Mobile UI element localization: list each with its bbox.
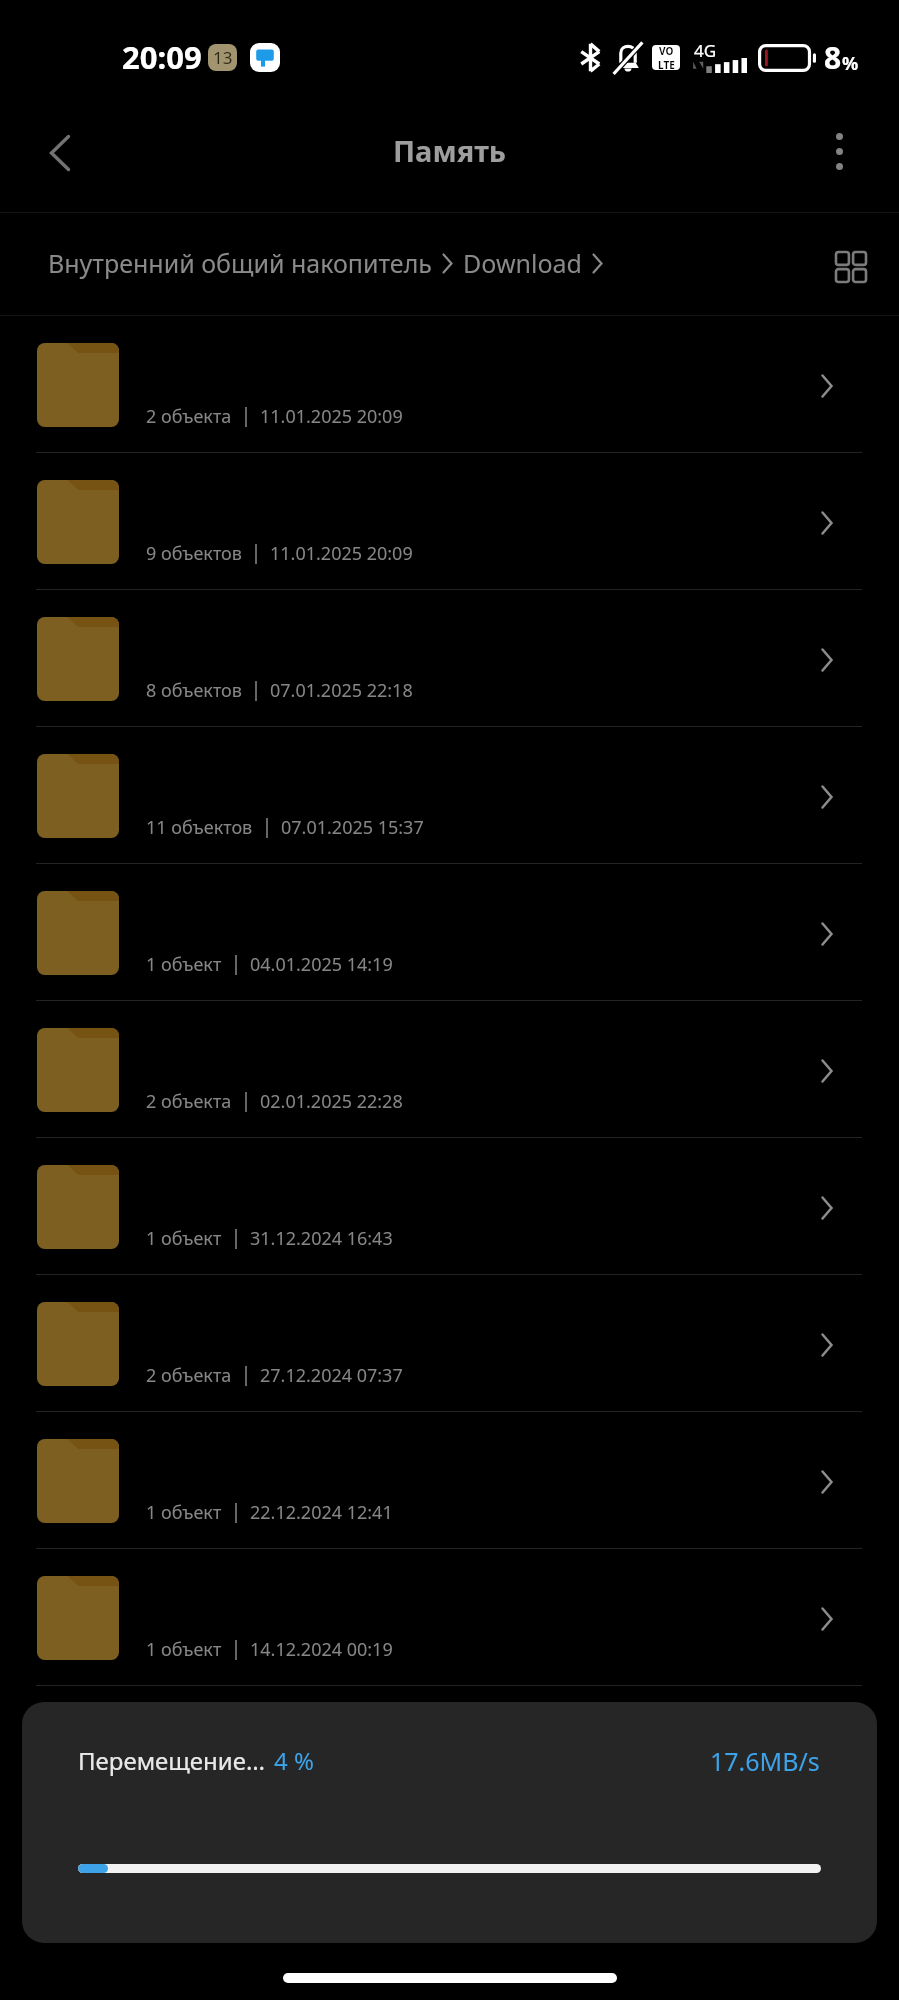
staticText: 20:09 (122, 36, 202, 78)
staticText: 4 % (274, 1744, 314, 1777)
staticText: 31.12.2024 16:43 (250, 1226, 393, 1251)
staticText: 2 объекта (146, 404, 232, 429)
staticText: 9 объектов (146, 541, 242, 566)
staticText: VO (659, 45, 674, 58)
staticText: 17.6MB/s (710, 1744, 820, 1778)
button[interactable]: Внутренний общий накопитель (48, 246, 603, 280)
staticText: 11.01.2025 20:09 (270, 541, 413, 566)
button[interactable]: 1 объект (0, 1549, 899, 1686)
button[interactable]: Grid view (815, 229, 887, 301)
staticText: % (842, 51, 859, 76)
staticText: 8 (824, 37, 842, 78)
staticText: 2 объекта (146, 1363, 232, 1388)
staticText: 2 объекта (146, 1089, 232, 1114)
staticText: Внутренний общий накопитель (48, 246, 432, 280)
button[interactable]: Перемещение… (22, 1702, 877, 1943)
button[interactable]: 8 объектов (0, 590, 899, 727)
staticText: 07.01.2025 22:18 (270, 678, 413, 703)
staticText: 1 объект (146, 1226, 222, 1251)
staticText: 14.12.2024 00:19 (250, 1637, 393, 1662)
staticText: 13 (213, 46, 233, 69)
button[interactable]: 2 объекта (0, 1001, 899, 1138)
button[interactable]: 2 объекта (0, 316, 899, 453)
staticText: 1 объект (146, 1637, 222, 1662)
staticText: 11 объектов (146, 815, 253, 840)
staticText: 22.12.2024 12:41 (250, 1500, 393, 1525)
button[interactable]: 11 объектов (0, 727, 899, 864)
button[interactable]: 9 объектов (0, 453, 899, 590)
staticText: Перемещение… (78, 1744, 265, 1777)
staticText: 1 объект (146, 952, 222, 977)
staticText: 4G (694, 39, 717, 62)
button[interactable]: 2 объекта (0, 1275, 899, 1412)
staticText: Download (463, 246, 582, 280)
staticText: LTE (658, 58, 675, 69)
staticText: Память (393, 131, 506, 170)
button[interactable]: 1 объект (0, 1412, 899, 1549)
button[interactable]: Back (24, 119, 96, 191)
staticText: 1 объект (146, 1500, 222, 1525)
staticText: 11.01.2025 20:09 (260, 404, 403, 429)
button[interactable]: 1 объект (0, 1138, 899, 1275)
staticText: 8 объектов (146, 678, 242, 703)
button[interactable]: More options (801, 119, 873, 191)
staticText: 04.01.2025 14:19 (250, 952, 393, 977)
button[interactable]: 1 объект (0, 864, 899, 1001)
staticText: 07.01.2025 15:37 (281, 815, 424, 840)
staticText: 27.12.2024 07:37 (260, 1363, 403, 1388)
staticText: 02.01.2025 22:28 (260, 1089, 403, 1114)
